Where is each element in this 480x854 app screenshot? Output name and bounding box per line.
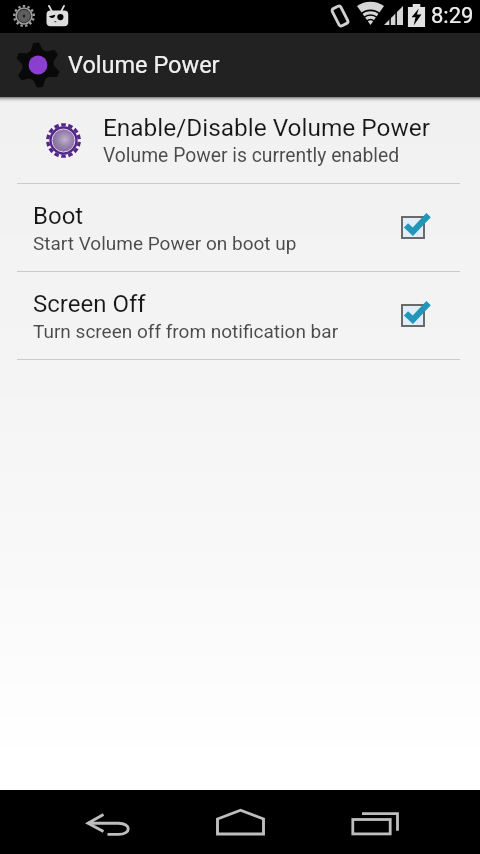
staticText: Volume Power is currently enabled: [103, 144, 400, 167]
button[interactable]: Home: [173, 790, 307, 854]
staticText: Start Volume Power on boot up: [33, 232, 297, 254]
button[interactable]: Back: [39, 790, 173, 854]
button[interactable]: Enable/Disable Volume Power: [0, 97, 480, 183]
button[interactable]: Volume Power: [0, 33, 480, 97]
staticText: Boot: [33, 202, 84, 230]
button[interactable]: Recent apps: [307, 790, 441, 854]
staticText: Enable/Disable Volume Power: [103, 113, 430, 142]
button[interactable]: Screen Off: [0, 272, 480, 359]
staticText: Screen Off: [33, 290, 146, 318]
button[interactable]: Boot: [0, 184, 480, 271]
staticText: Turn screen off from notification bar: [33, 320, 339, 342]
staticText: 8:29: [431, 3, 474, 29]
staticText: Volume Power: [68, 51, 220, 79]
